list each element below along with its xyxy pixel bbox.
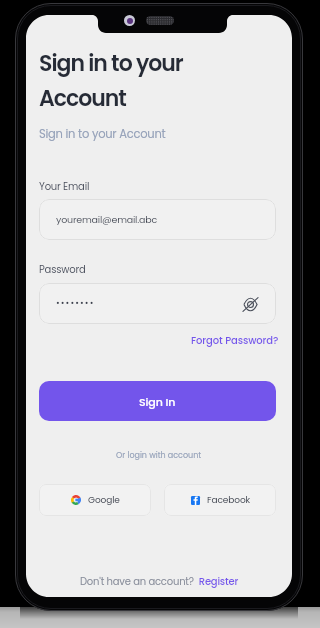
button[interactable]: Facebook — [164, 484, 276, 516]
staticText: Sign In — [139, 394, 176, 409]
staticText: Facebook — [207, 494, 251, 507]
button[interactable]: Sign In — [39, 381, 276, 421]
button[interactable]: Forgot Password? — [176, 331, 279, 348]
staticText: Google — [88, 494, 120, 507]
button[interactable]: Show password — [240, 294, 260, 314]
staticText: •••••••• — [56, 297, 95, 310]
staticText: Password — [39, 262, 86, 276]
button[interactable]: Google — [39, 484, 151, 516]
button[interactable]: •••••••• — [39, 283, 276, 324]
button[interactable]: youremail@email.abc — [39, 199, 276, 240]
staticText: Your Email — [39, 179, 90, 193]
staticText: Don't have an account? Register — [80, 574, 239, 588]
staticText: Sign in to your Account — [39, 48, 183, 113]
staticText: Sign in to your Account — [39, 126, 166, 142]
staticText: youremail@email.abc — [56, 213, 158, 226]
button[interactable]: Don't have an account? Register — [26, 570, 292, 592]
staticText: Or login with account — [116, 450, 202, 461]
staticText: Forgot Password? — [191, 333, 279, 347]
